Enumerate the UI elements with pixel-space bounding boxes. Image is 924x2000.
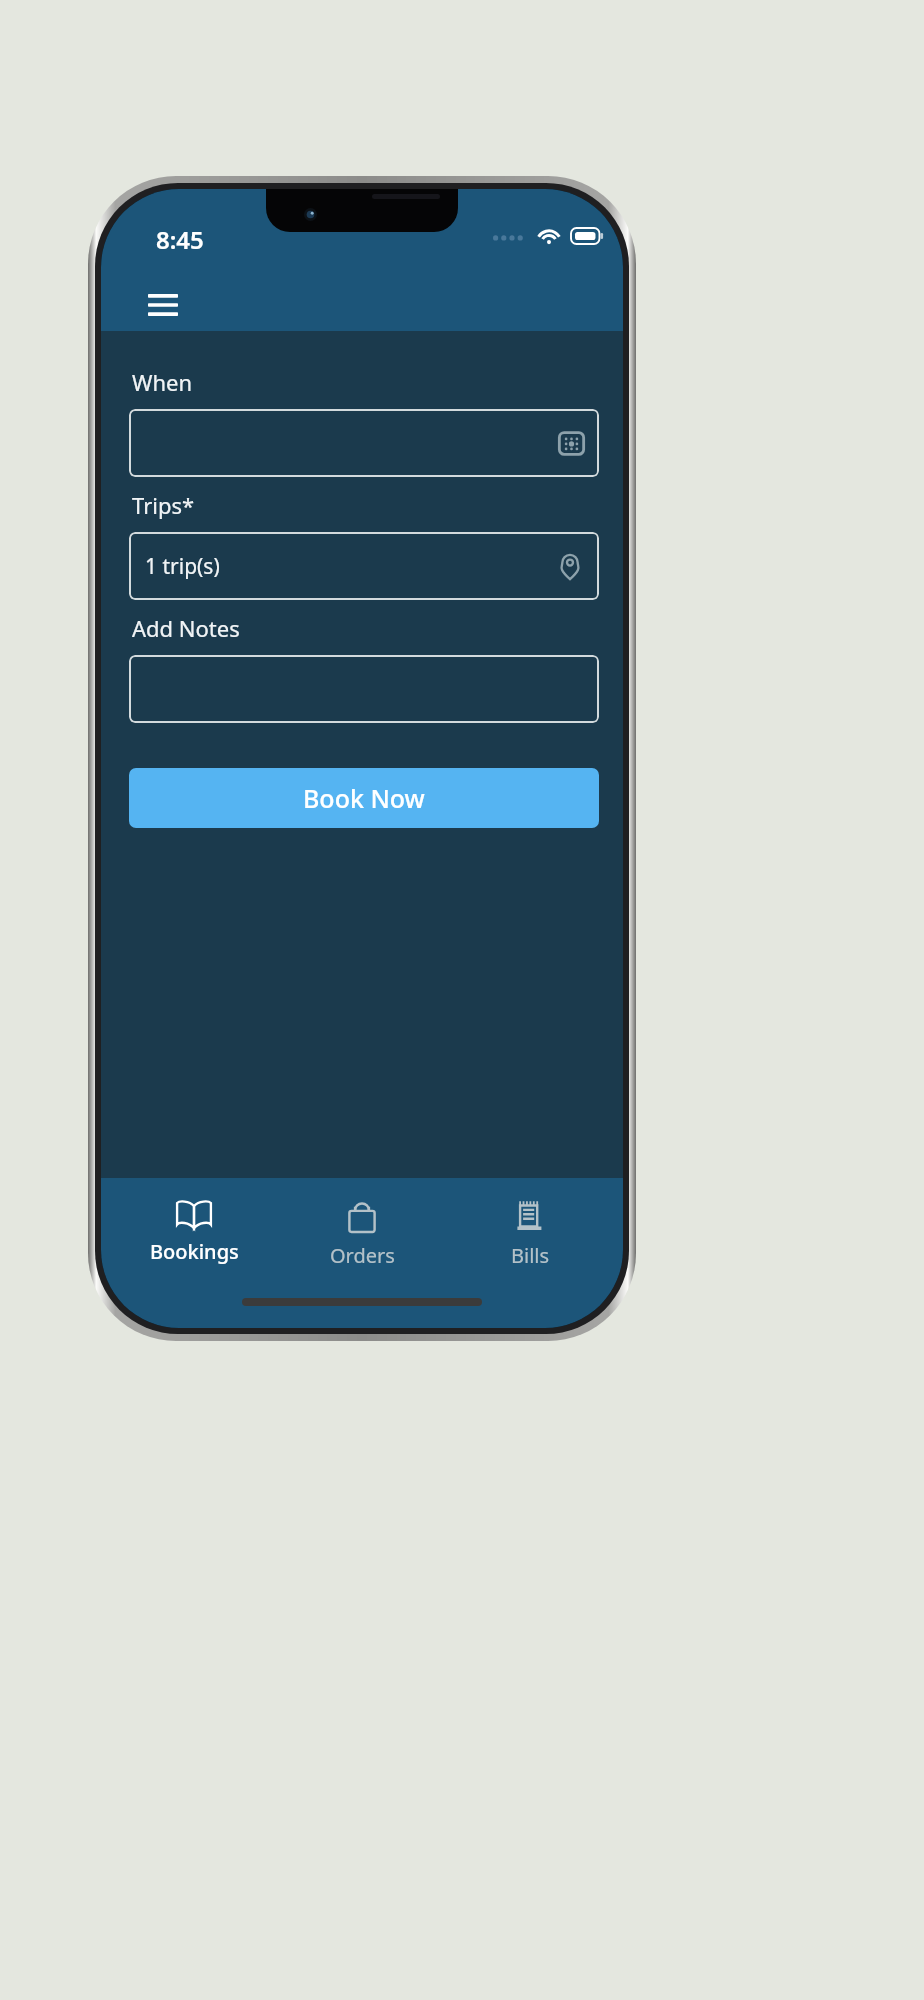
staticText: Trips*: [132, 490, 195, 520]
button[interactable]: Bills: [455, 1194, 605, 1275]
button[interactable]: Add notes: [129, 655, 599, 723]
staticText: Bookings: [150, 1238, 239, 1265]
button[interactable]: Book Now: [129, 768, 599, 828]
button[interactable]: Open navigation menu: [137, 279, 189, 331]
staticText: 1 trip(s): [145, 552, 220, 581]
staticText: Book Now: [303, 781, 425, 815]
staticText: When: [132, 367, 193, 397]
button[interactable]: 1 trip(s): [129, 532, 599, 600]
staticText: Bills: [511, 1242, 550, 1269]
staticText: Orders: [330, 1242, 395, 1269]
staticText: 8:45: [156, 223, 204, 256]
button[interactable]: Pick a date: [129, 409, 599, 477]
button[interactable]: Bookings: [119, 1194, 269, 1271]
staticText: Add Notes: [132, 613, 240, 643]
button[interactable]: Orders: [287, 1194, 437, 1275]
